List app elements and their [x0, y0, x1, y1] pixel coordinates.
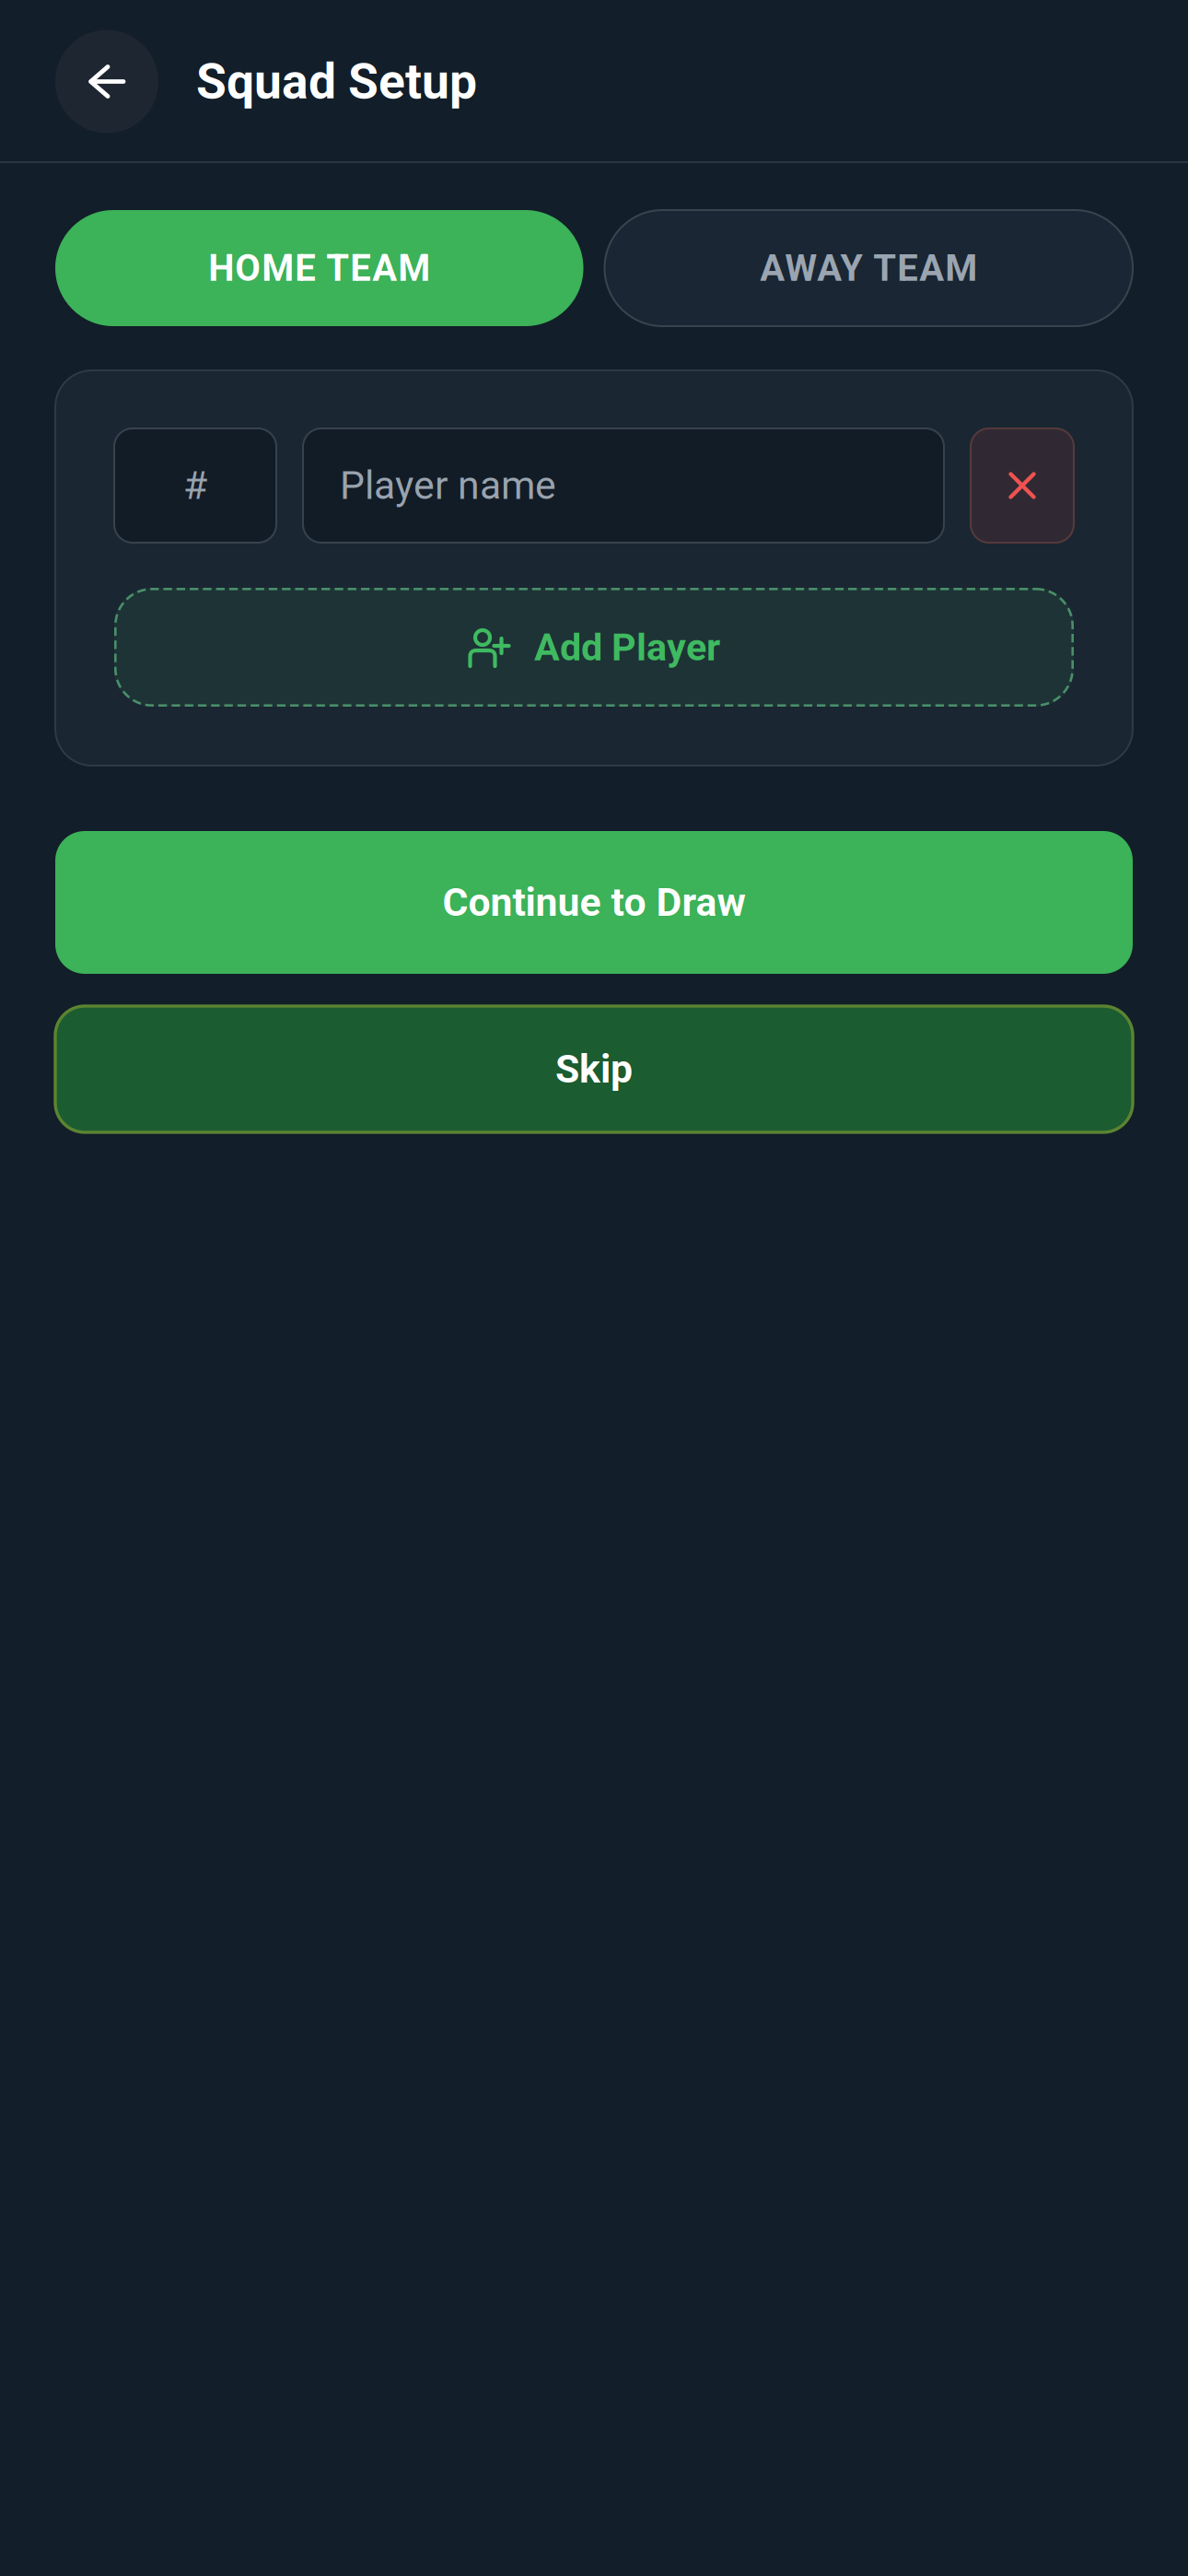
button[interactable]: HOME TEAM — [55, 210, 583, 326]
button[interactable]: Remove player — [971, 428, 1074, 543]
button[interactable]: Back — [55, 30, 158, 133]
button[interactable]: Continue to Draw — [55, 831, 1133, 974]
staticText: Squad Setup — [196, 53, 477, 110]
button[interactable]: AWAY TEAM — [605, 210, 1133, 326]
staticText: Continue to Draw — [443, 879, 745, 925]
button[interactable]: Add Player — [114, 588, 1074, 707]
staticText: # — [183, 463, 207, 509]
button[interactable]: Skip — [55, 1006, 1133, 1132]
staticText: Skip — [555, 1046, 633, 1092]
staticText: AWAY TEAM — [760, 247, 977, 290]
staticText: HOME TEAM — [208, 247, 430, 290]
staticText: Add Player — [534, 625, 720, 670]
staticText: Player name — [340, 463, 556, 509]
